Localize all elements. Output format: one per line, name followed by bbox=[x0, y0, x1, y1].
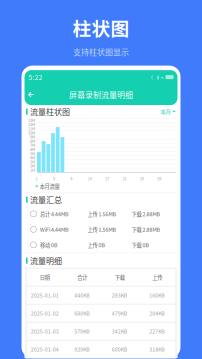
staticText: 600KB bbox=[112, 345, 128, 353]
button[interactable]: 总计 4.44MB bbox=[24, 206, 177, 222]
staticText: 13 bbox=[88, 176, 92, 181]
staticText: 本月 bbox=[160, 108, 170, 115]
staticText: 柱状图 bbox=[72, 14, 129, 41]
staticText: 479KB bbox=[112, 309, 128, 317]
button[interactable]: 本月 bbox=[160, 108, 176, 115]
staticText: 1M bbox=[30, 167, 35, 173]
staticText: 流量明细 bbox=[30, 255, 62, 266]
staticText: 9M bbox=[30, 134, 35, 140]
staticText: 8M bbox=[30, 138, 35, 144]
staticText: 318KB bbox=[149, 345, 165, 353]
staticText: 440KB bbox=[74, 291, 90, 299]
staticText: 9 bbox=[70, 176, 72, 181]
staticText: 21 bbox=[122, 176, 126, 181]
button[interactable]: WiFi 4.44MB bbox=[24, 222, 177, 237]
staticText: 160KB bbox=[149, 291, 165, 299]
staticText: 日期 bbox=[40, 273, 50, 281]
staticText: ☾ ıl ⌁ bbox=[150, 73, 163, 81]
staticText: 10M bbox=[28, 130, 35, 135]
staticText: 3M bbox=[30, 159, 35, 165]
staticText: 支持柱状图显示 bbox=[73, 46, 129, 58]
staticText: 29 bbox=[157, 176, 161, 181]
staticText: WiFi 4.44MB bbox=[40, 225, 69, 233]
staticText: 下载 2.88MB bbox=[131, 210, 160, 218]
staticText: 6M bbox=[30, 146, 35, 152]
staticText: 4M bbox=[30, 155, 35, 160]
staticText: 下载 bbox=[115, 273, 125, 281]
staticText: 5 bbox=[53, 176, 55, 181]
staticText: 25 bbox=[140, 176, 144, 181]
staticText: 204KB bbox=[149, 309, 165, 317]
staticText: 合计 bbox=[77, 273, 87, 281]
staticText: 11M bbox=[28, 126, 35, 131]
staticText: 680KB bbox=[74, 309, 90, 317]
staticText: 下载 0B bbox=[131, 241, 149, 249]
staticText: 2025-01-01 bbox=[31, 291, 59, 299]
staticText: 下载 2.88MB bbox=[131, 225, 160, 233]
staticText: 227KB bbox=[149, 327, 165, 335]
staticText: 上传 1.56MB bbox=[87, 210, 116, 218]
staticText: 2025-01-04 bbox=[31, 345, 59, 353]
button[interactable]: 返回 bbox=[26, 90, 36, 100]
staticText: 12M bbox=[28, 121, 35, 127]
staticText: 7M bbox=[30, 142, 35, 148]
staticText: 342KB bbox=[112, 327, 128, 335]
staticText: 920KB bbox=[74, 345, 90, 353]
staticText: 2M bbox=[30, 163, 35, 169]
button[interactable]: 移动 0B bbox=[24, 237, 177, 253]
staticText: 570KB bbox=[74, 327, 90, 335]
staticText: 5M bbox=[30, 150, 35, 156]
staticText: 1 bbox=[35, 176, 37, 181]
staticText: 上传 bbox=[152, 273, 162, 281]
staticText: 283KB bbox=[112, 291, 128, 299]
staticText: 上传 1.56MB bbox=[87, 225, 116, 233]
staticText: 总计 4.44MB bbox=[40, 210, 69, 218]
staticText: 17 bbox=[105, 176, 109, 181]
staticText: 上传 0B bbox=[87, 241, 105, 249]
staticText: 流量汇总 bbox=[30, 194, 62, 205]
staticText: 13M bbox=[28, 117, 35, 123]
staticText: 流量柱状图 bbox=[30, 106, 70, 117]
staticText: 2025-01-02 bbox=[31, 309, 59, 317]
staticText: 本月流量 bbox=[39, 182, 59, 190]
staticText: 移动 0B bbox=[40, 241, 58, 249]
staticText: 5:22 bbox=[28, 72, 42, 82]
staticText: 2025-01-03 bbox=[31, 327, 59, 335]
staticText: 屏幕录制流量明细 bbox=[69, 89, 133, 100]
